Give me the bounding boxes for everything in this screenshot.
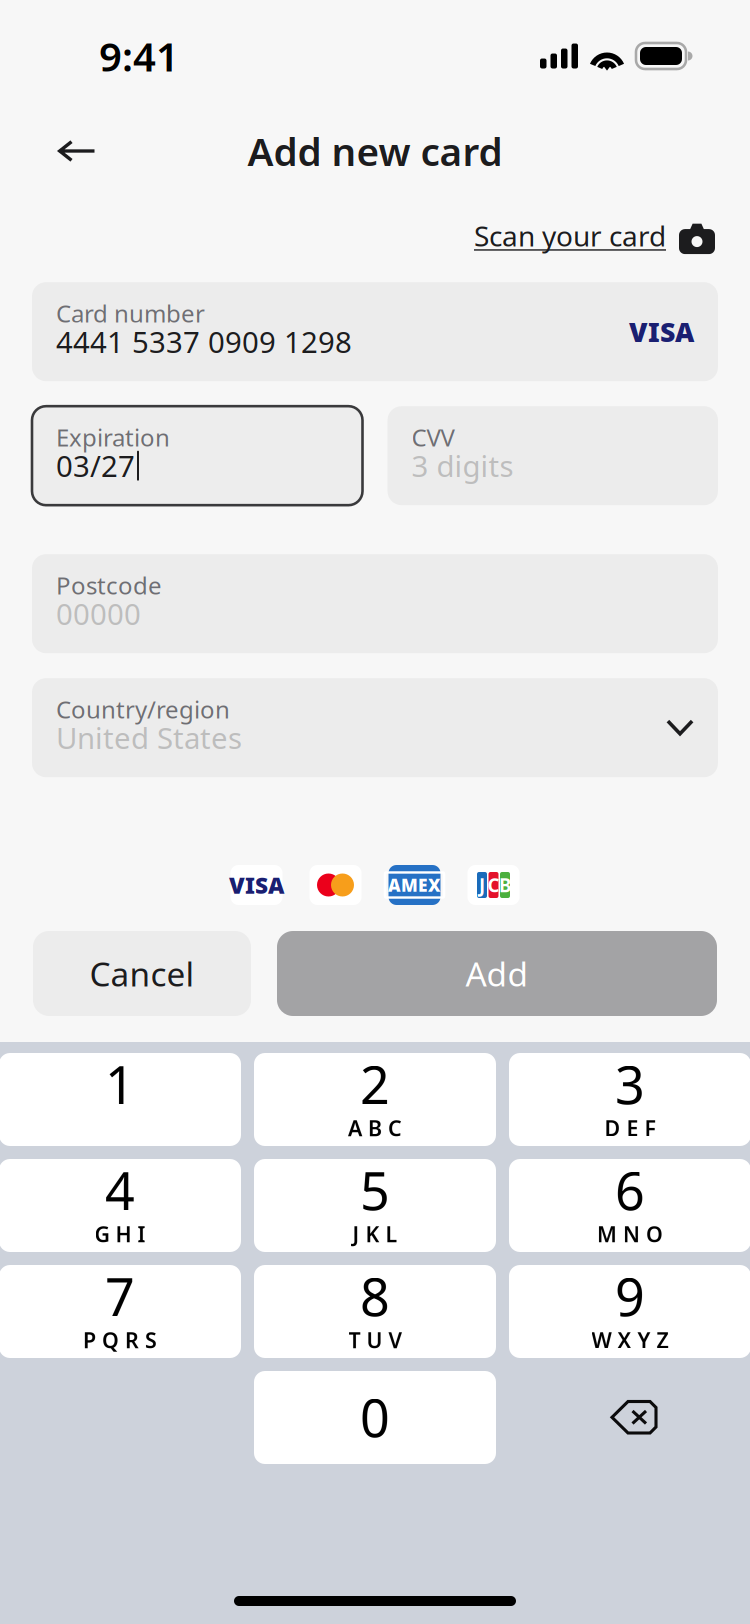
- staticText: 2: [360, 1049, 390, 1119]
- button[interactable]: 4: [0, 1159, 241, 1252]
- staticText: 9: [615, 1261, 645, 1331]
- staticText: 8: [360, 1261, 390, 1331]
- staticText: Expiration: [56, 421, 170, 453]
- staticText: G H I: [94, 1220, 145, 1248]
- button[interactable]: 6: [509, 1159, 750, 1252]
- staticText: J: [479, 873, 485, 897]
- staticText: 5: [360, 1155, 390, 1225]
- button[interactable]: 7: [0, 1265, 241, 1358]
- button[interactable]: 3: [509, 1053, 750, 1146]
- staticText: Card number: [56, 297, 205, 329]
- button[interactable]: Back: [46, 120, 108, 182]
- staticText: 3 digits: [411, 446, 513, 485]
- button[interactable]: Cancel: [33, 931, 251, 1016]
- staticText: AMEX: [388, 873, 441, 896]
- staticText: Add new card: [247, 125, 502, 177]
- staticText: 00000: [56, 594, 141, 633]
- button[interactable]: 5: [254, 1159, 496, 1252]
- staticText: B: [499, 873, 511, 897]
- button[interactable]: 8: [254, 1265, 496, 1358]
- staticText: Cancel: [89, 951, 194, 996]
- staticText: Scan your card: [474, 217, 666, 254]
- staticText: P Q R S: [83, 1326, 157, 1354]
- button[interactable]: 9: [509, 1265, 750, 1358]
- staticText: J K L: [352, 1220, 397, 1248]
- staticText: A B C: [348, 1114, 402, 1142]
- staticText: VISA: [629, 314, 694, 349]
- staticText: 0: [360, 1382, 390, 1452]
- staticText: 6: [615, 1155, 645, 1225]
- staticText: M N O: [597, 1220, 663, 1248]
- staticText: 1: [105, 1049, 135, 1119]
- staticText: 03/27: [56, 446, 135, 485]
- button[interactable]: Scan your card: [474, 213, 715, 258]
- button[interactable]: Delete: [509, 1371, 750, 1464]
- staticText: CVV: [411, 421, 454, 453]
- staticText: 3: [615, 1049, 645, 1119]
- staticText: T U V: [348, 1326, 401, 1354]
- staticText: 9:41: [99, 29, 179, 82]
- staticText: 4: [105, 1155, 135, 1225]
- staticText: C: [487, 873, 499, 897]
- staticText: United States: [56, 718, 242, 757]
- staticText: Postcode: [56, 569, 162, 601]
- staticText: W X Y Z: [591, 1326, 668, 1354]
- staticText: 7: [105, 1261, 135, 1331]
- staticText: Country/region: [56, 693, 230, 725]
- staticText: VISA: [229, 870, 284, 900]
- staticText: Add: [465, 951, 528, 996]
- button[interactable]: 0: [254, 1371, 496, 1464]
- staticText: D E F: [604, 1114, 655, 1142]
- button[interactable]: 2: [254, 1053, 496, 1146]
- staticText: 4441 5337 0909 1298: [56, 322, 352, 361]
- button[interactable]: 1: [0, 1053, 241, 1146]
- button[interactable]: Add: [277, 931, 717, 1016]
